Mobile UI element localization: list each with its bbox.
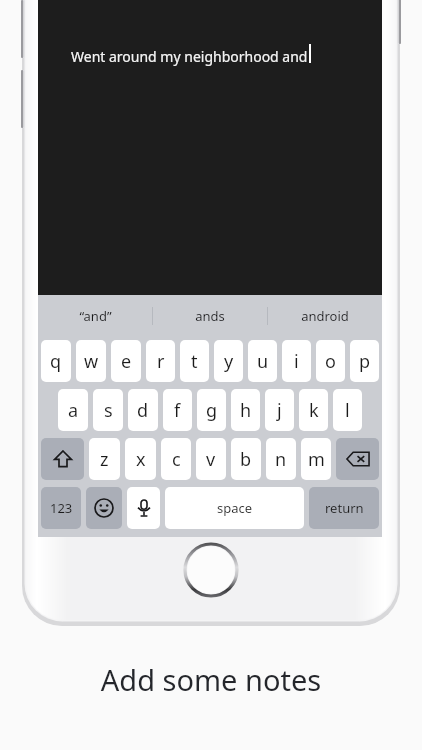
staticText: l: [345, 398, 350, 423]
button[interactable]: p: [350, 340, 379, 382]
button[interactable]: Backspace: [336, 438, 379, 480]
staticText: a: [68, 398, 79, 423]
staticText: u: [257, 349, 269, 374]
staticText: g: [206, 398, 218, 423]
button[interactable]: o: [316, 340, 345, 382]
staticText: i: [294, 349, 299, 374]
staticText: v: [206, 447, 216, 472]
button[interactable]: l: [333, 389, 362, 431]
button[interactable]: ands: [153, 295, 267, 337]
staticText: c: [172, 447, 181, 472]
button[interactable]: “and”: [38, 295, 152, 337]
button[interactable]: u: [248, 340, 277, 382]
button[interactable]: m: [301, 438, 331, 480]
staticText: t: [191, 349, 198, 374]
button[interactable]: Space: [165, 487, 304, 529]
button[interactable]: n: [266, 438, 296, 480]
staticText: r: [157, 349, 165, 374]
staticText: s: [104, 398, 113, 423]
staticText: return: [325, 499, 364, 517]
staticText: m: [308, 447, 325, 472]
button[interactable]: s: [93, 389, 123, 431]
button[interactable]: android: [268, 295, 382, 337]
staticText: e: [121, 349, 132, 374]
button[interactable]: h: [231, 389, 260, 431]
button[interactable]: v: [196, 438, 226, 480]
button[interactable]: w: [76, 340, 106, 382]
staticText: z: [100, 447, 109, 472]
button[interactable]: a: [58, 389, 88, 431]
button[interactable]: Return: [309, 487, 379, 529]
staticText: b: [240, 447, 252, 472]
button[interactable]: r: [146, 340, 175, 382]
button[interactable]: y: [214, 340, 243, 382]
button[interactable]: x: [125, 438, 156, 480]
button[interactable]: t: [180, 340, 209, 382]
staticText: x: [136, 447, 146, 472]
button[interactable]: q: [41, 340, 71, 382]
staticText: 123: [50, 499, 73, 517]
button[interactable]: Home: [183, 542, 239, 598]
button[interactable]: j: [265, 389, 294, 431]
staticText: p: [359, 349, 371, 374]
button[interactable]: i: [282, 340, 311, 382]
staticText: f: [174, 398, 181, 423]
staticText: h: [240, 398, 252, 423]
staticText: y: [224, 349, 234, 374]
button[interactable]: Dictate: [127, 487, 160, 529]
button[interactable]: d: [128, 389, 158, 431]
button[interactable]: Shift: [41, 438, 84, 480]
button[interactable]: b: [231, 438, 261, 480]
staticText: android: [301, 307, 349, 325]
button[interactable]: Numbers: [41, 487, 81, 529]
staticText: ands: [195, 307, 225, 325]
staticText: space: [217, 499, 253, 517]
staticText: q: [50, 349, 62, 374]
button[interactable]: z: [89, 438, 120, 480]
button[interactable]: g: [197, 389, 226, 431]
button[interactable]: e: [111, 340, 141, 382]
button[interactable]: Emoji: [86, 487, 122, 529]
button[interactable]: c: [161, 438, 191, 480]
staticText: Went around my neighborhood and: [71, 47, 308, 66]
staticText: d: [137, 398, 149, 423]
staticText: o: [325, 349, 336, 374]
button[interactable]: f: [163, 389, 192, 431]
button[interactable]: k: [299, 389, 328, 431]
staticText: n: [275, 447, 287, 472]
staticText: k: [309, 398, 319, 423]
staticText: “and”: [79, 307, 112, 325]
staticText: j: [277, 398, 282, 423]
staticText: Add some notes: [0, 660, 422, 699]
staticText: w: [84, 349, 99, 374]
